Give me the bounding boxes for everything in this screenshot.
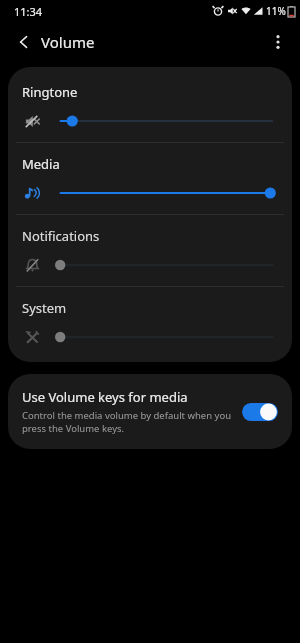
staticText: 11:34 — [14, 4, 43, 19]
staticText: Media — [22, 155, 60, 173]
staticText: Use Volume keys for media — [22, 388, 188, 406]
button[interactable]: Back — [8, 26, 40, 58]
button[interactable]: Notifications — [8, 215, 292, 286]
staticText: Ringtone — [22, 83, 78, 101]
staticText: Control the media volume by default when… — [22, 409, 232, 435]
staticText: Notifications — [22, 227, 100, 245]
button[interactable]: Ringtone — [8, 71, 292, 142]
button[interactable]: More options — [262, 26, 294, 58]
button[interactable]: System — [8, 287, 292, 358]
staticText: Volume — [41, 32, 95, 52]
staticText: 11% — [266, 4, 286, 18]
button[interactable]: Use Volume keys for media — [8, 374, 292, 449]
staticText: System — [22, 299, 67, 317]
button[interactable]: Use Volume keys for media toggle — [242, 401, 278, 423]
button[interactable]: Media — [8, 143, 292, 214]
